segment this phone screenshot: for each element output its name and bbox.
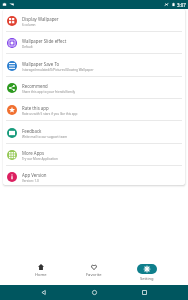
staticText: 6 column (22, 23, 36, 27)
staticText: Version: 1.0 (22, 179, 39, 183)
button[interactable]: Back (36, 285, 51, 300)
button[interactable]: Home (87, 285, 102, 300)
staticText: Home (35, 272, 47, 278)
staticText: 3:07 (177, 2, 186, 8)
staticText: /storage/emulated/0/Pictures/Glowing Wal… (22, 68, 94, 72)
staticText: Favorite (86, 272, 102, 278)
staticText: Rate us with 5 stars if you like this ap… (22, 112, 78, 116)
button[interactable]: More Apps (3, 144, 185, 166)
staticText: Recommend (22, 83, 48, 89)
staticText: Share this app to your friends/family (22, 90, 76, 94)
staticText: More Apps (22, 150, 45, 156)
button[interactable]: Feedback (3, 122, 185, 144)
button[interactable]: Wallpaper Slide effect (3, 32, 185, 54)
staticText: Feedback (22, 128, 42, 134)
staticText: Default (22, 45, 33, 49)
staticText: Rate this app (22, 105, 49, 111)
button[interactable]: Wallpaper Save To (3, 55, 185, 77)
staticText: Wallpaper Slide effect (22, 38, 67, 44)
staticText: Display Wallpaper (22, 16, 59, 22)
button[interactable]: Rate this app (3, 99, 185, 121)
staticText: Setting (140, 276, 154, 282)
staticText: Wallpaper Save To (22, 61, 60, 67)
staticText: Try our More Application (22, 157, 58, 161)
staticText: App Version (22, 172, 47, 178)
button[interactable]: App Version (3, 166, 185, 185)
button[interactable]: Display Wallpaper (3, 10, 185, 32)
button[interactable]: Home (33, 264, 49, 278)
button[interactable]: Favorite (84, 264, 104, 278)
button[interactable]: Recents (137, 285, 152, 300)
staticText: Write mail to our support team (22, 135, 68, 139)
button[interactable]: Setting (135, 264, 159, 282)
button[interactable]: Recommend (3, 77, 185, 99)
